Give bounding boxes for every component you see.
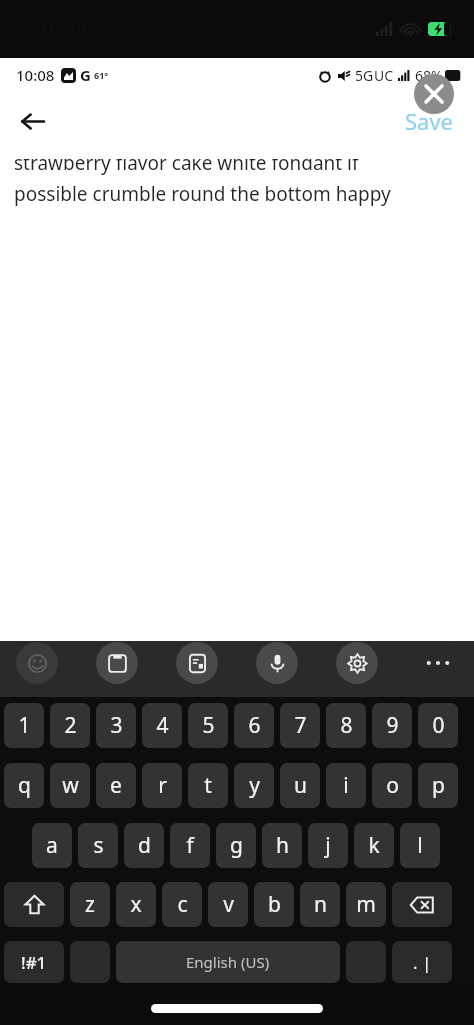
staticText: UC (374, 66, 394, 85)
staticText: 5 (202, 711, 215, 740)
button[interactable]: l (400, 823, 440, 868)
button[interactable]: j (308, 823, 348, 868)
staticText: o (386, 771, 399, 800)
button[interactable]: f (170, 823, 210, 868)
staticText: 4 (156, 711, 169, 740)
button[interactable]: q (4, 763, 44, 808)
staticText: G (80, 65, 91, 85)
button[interactable]: i (326, 763, 366, 808)
button[interactable]: !#1 (4, 941, 64, 983)
staticText: t (204, 771, 212, 800)
button[interactable]: Back (8, 97, 56, 145)
staticText: b (268, 890, 281, 919)
button[interactable]: More options (416, 641, 460, 685)
button[interactable]: r (142, 763, 182, 808)
staticText: 2 (64, 711, 77, 740)
staticText: w (62, 771, 79, 800)
button[interactable]: w (50, 763, 90, 808)
staticText: d (138, 831, 151, 860)
staticText: z (85, 890, 95, 919)
button[interactable]: Translate (176, 642, 218, 684)
button[interactable]: Backspace (392, 882, 452, 927)
button[interactable]: m (346, 882, 386, 927)
staticText: k (368, 831, 380, 860)
button[interactable]: . | (392, 941, 452, 983)
staticText: s (93, 831, 104, 860)
button[interactable]: c (162, 882, 202, 927)
staticText: English (US) (186, 952, 270, 972)
button[interactable]: 5 (188, 703, 228, 748)
button[interactable]: v (208, 882, 248, 927)
staticText: 3 (110, 711, 123, 740)
button[interactable]: d (124, 823, 164, 868)
staticText: v (223, 890, 234, 919)
staticText: c (177, 890, 188, 919)
staticText: Save (405, 106, 454, 136)
staticText: r (158, 771, 167, 800)
button[interactable]: Comma (70, 941, 110, 983)
staticText: x (130, 890, 142, 919)
button[interactable]: 8 (326, 703, 366, 748)
staticText: possible crumble round the bottom happy (14, 181, 391, 207)
button[interactable]: b (254, 882, 294, 927)
staticText: 1 (18, 711, 31, 740)
button[interactable]: a (32, 823, 72, 868)
button[interactable]: 9 (372, 703, 412, 748)
button[interactable]: s (78, 823, 118, 868)
staticText: a (46, 831, 58, 860)
button[interactable]: o (372, 763, 412, 808)
button[interactable]: English (US) (116, 941, 340, 983)
button[interactable]: Shift (4, 882, 64, 927)
staticText: 9 (386, 711, 399, 740)
staticText: 8 (340, 711, 353, 740)
staticText: . | (413, 951, 432, 974)
button[interactable]: e (96, 763, 136, 808)
staticText: 5G (355, 66, 374, 85)
staticText: g (230, 831, 243, 860)
button[interactable]: t (188, 763, 228, 808)
button[interactable]: 0 (418, 703, 458, 748)
staticText: 61° (94, 69, 109, 81)
button[interactable]: p (418, 763, 458, 808)
button[interactable]: 4 (142, 703, 182, 748)
staticText: h (276, 831, 289, 860)
button[interactable]: u (280, 763, 320, 808)
button[interactable]: n (300, 882, 340, 927)
staticText: 10:08 (16, 65, 55, 85)
button[interactable]: k (354, 823, 394, 868)
staticText: y (249, 771, 260, 800)
staticText: m (356, 890, 376, 919)
button[interactable]: y (234, 763, 274, 808)
staticText: !#1 (21, 951, 47, 974)
button[interactable]: 7 (280, 703, 320, 748)
button[interactable]: 1 (4, 703, 44, 748)
button[interactable]: 2 (50, 703, 90, 748)
staticText: q (18, 771, 31, 800)
button[interactable]: Save (399, 102, 460, 140)
button[interactable]: g (216, 823, 256, 868)
staticText: i (343, 771, 349, 800)
button[interactable]: h (262, 823, 302, 868)
button[interactable]: Settings (336, 642, 378, 684)
staticText: strawberry flavor cake white fondant if (14, 159, 359, 176)
staticText: j (325, 831, 331, 860)
button[interactable]: z (70, 882, 110, 927)
button[interactable]: 6 (234, 703, 274, 748)
button[interactable]: 3 (96, 703, 136, 748)
button[interactable]: Close (414, 74, 454, 114)
button[interactable]: Voice input (256, 642, 298, 684)
staticText: u (294, 771, 307, 800)
staticText: n (314, 890, 327, 919)
staticText: e (110, 771, 122, 800)
button[interactable]: Clipboard (96, 642, 138, 684)
staticText: l (417, 831, 423, 860)
button[interactable]: Emoji (16, 642, 58, 684)
staticText: f (186, 831, 194, 860)
button[interactable]: Period (346, 941, 386, 983)
staticText: 68% (415, 66, 443, 85)
staticText: 0 (432, 711, 445, 740)
staticText: 7 (294, 711, 307, 740)
button[interactable]: x (116, 882, 156, 927)
staticText: p (432, 771, 445, 800)
